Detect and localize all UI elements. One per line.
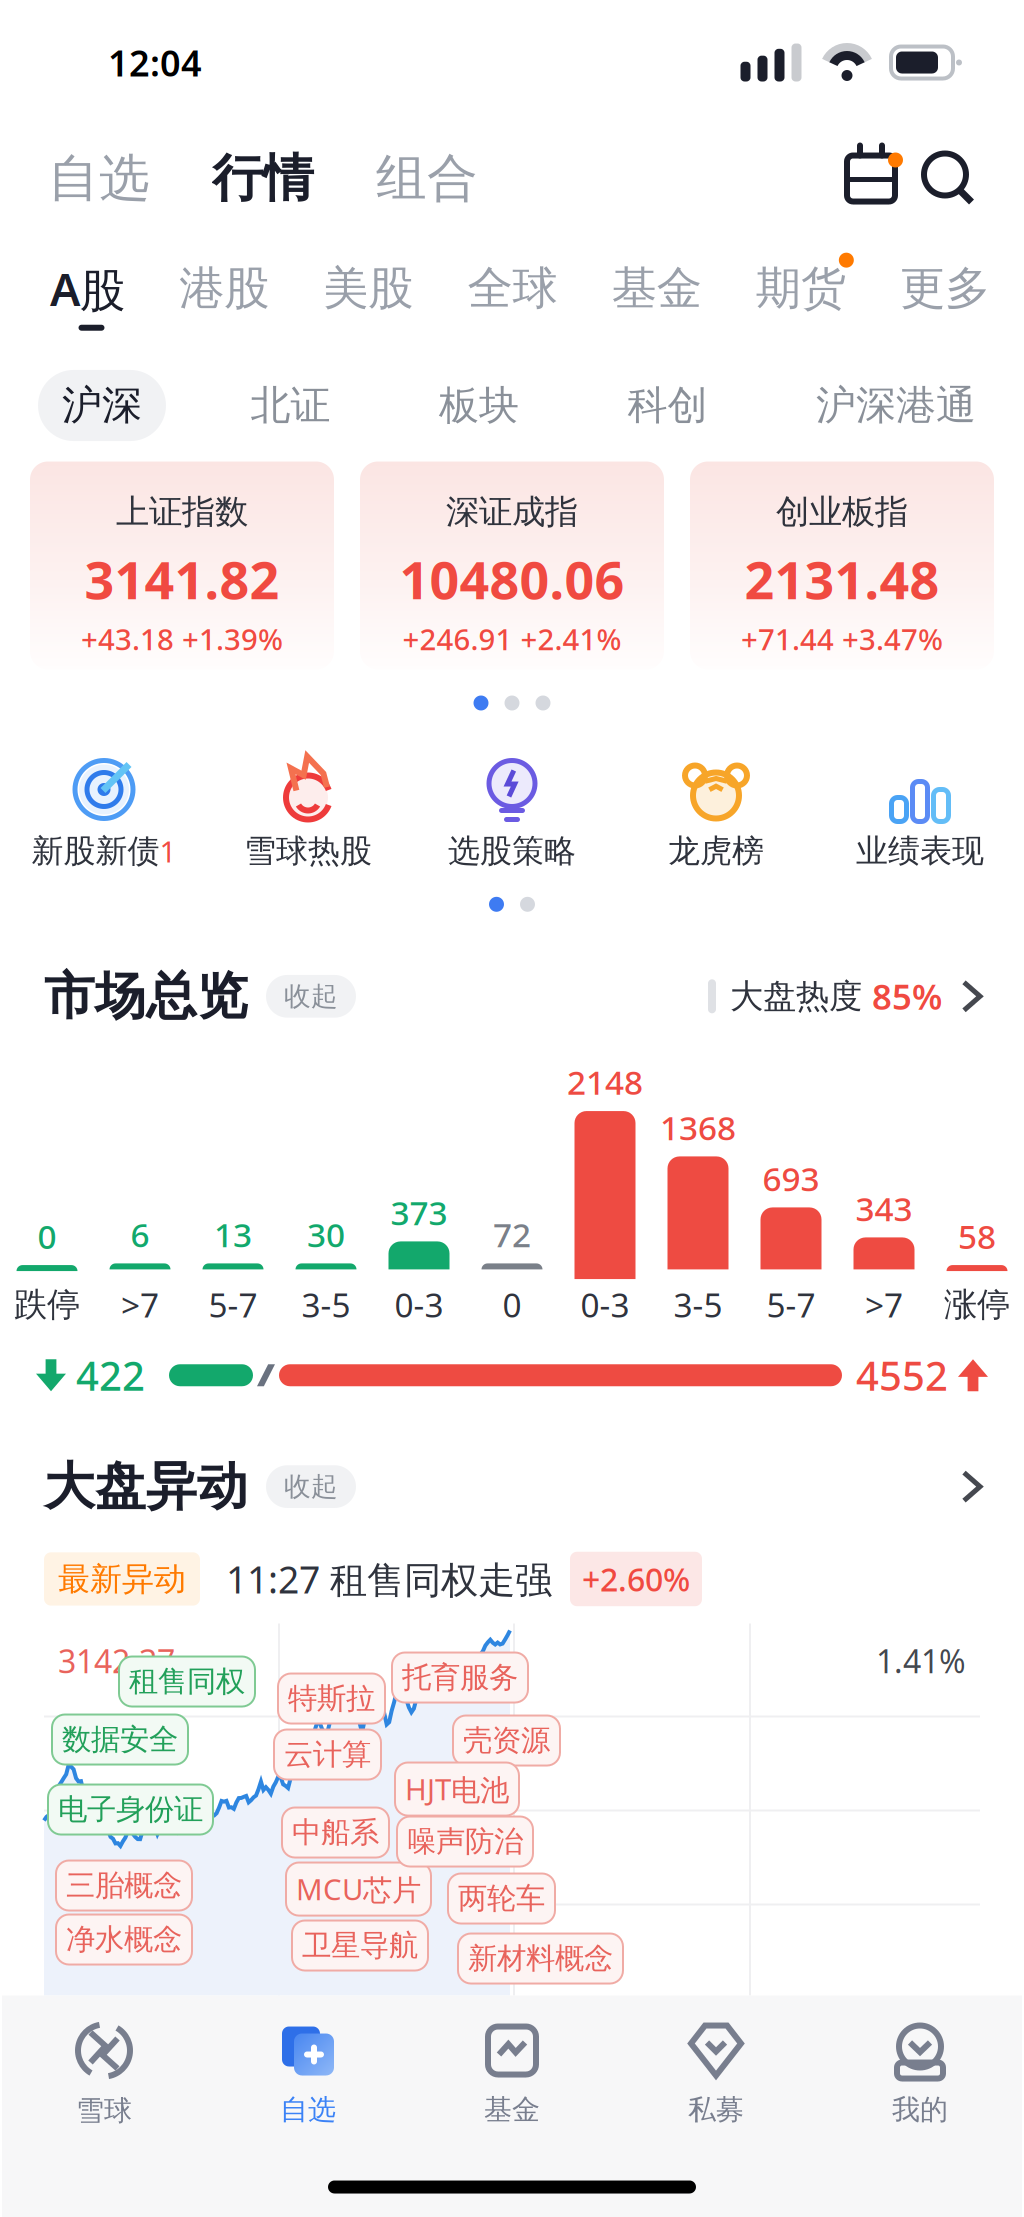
button[interactable]: 全球	[467, 253, 565, 328]
staticText: 中船系	[292, 1814, 379, 1850]
button[interactable]: 深证成指	[360, 461, 664, 669]
button[interactable]: 自选	[206, 2022, 410, 2127]
staticText: 美股	[323, 261, 413, 316]
button[interactable]: 更多	[900, 253, 998, 328]
staticText: 1368	[660, 1105, 736, 1149]
staticText: +246.91 +2.41%	[402, 619, 621, 658]
staticText: 12:04	[108, 39, 202, 86]
staticText: 自选	[48, 147, 150, 210]
staticText: 行情	[212, 147, 314, 210]
button[interactable]: 私募	[614, 2022, 818, 2127]
staticText: 三胎概念	[66, 1867, 182, 1903]
button[interactable]: 收起	[248, 975, 356, 1018]
staticText: 85%	[872, 973, 942, 1019]
staticText: 收起	[284, 980, 338, 1013]
button[interactable]: 大盘热度	[708, 973, 980, 1019]
staticText: 卫星导航	[302, 1927, 418, 1963]
staticText: MCU芯片	[296, 1869, 421, 1909]
staticText: 5-7	[766, 1282, 815, 1327]
staticText: 市场总览	[44, 965, 248, 1027]
staticText: 新股新债	[31, 831, 159, 871]
staticText: 涨停	[944, 1284, 1010, 1325]
staticText: 1	[159, 832, 176, 871]
button[interactable]: 雪球	[2, 2021, 206, 2128]
button[interactable]: 组合	[376, 147, 478, 210]
staticText: 科创	[627, 381, 707, 430]
staticText: 特斯拉	[288, 1680, 375, 1716]
staticText: 上证指数	[116, 491, 248, 532]
button[interactable]: 上证指数	[30, 461, 334, 669]
staticText: 373	[390, 1190, 447, 1234]
staticText: 我的	[892, 2092, 948, 2127]
staticText: 新材料概念	[468, 1940, 613, 1976]
staticText: 雪球	[76, 2093, 132, 2128]
staticText: 云计算	[284, 1736, 371, 1772]
staticText: 10480.06	[399, 544, 624, 613]
staticText: 沪深港通	[816, 381, 976, 430]
staticText: +2.60%	[582, 1558, 690, 1600]
button[interactable]: 基金	[612, 253, 710, 328]
button[interactable]: 板块	[415, 370, 543, 441]
button[interactable]: 新股新债	[2, 757, 206, 871]
button[interactable]: 北证	[226, 370, 354, 441]
button[interactable]: 科创	[603, 370, 731, 441]
button[interactable]: 我的	[818, 2022, 1022, 2127]
staticText: 58	[958, 1214, 996, 1258]
staticText: 基金	[484, 2092, 540, 2127]
staticText: 壳资源	[463, 1722, 550, 1758]
button[interactable]: 业绩表现	[818, 757, 1022, 871]
staticText: 5-7	[208, 1282, 257, 1327]
button[interactable]: 选股策略	[410, 757, 614, 871]
button[interactable]: 雪球热股	[206, 757, 410, 871]
staticText: 2131.48	[744, 544, 939, 613]
button[interactable]: 沪深	[38, 370, 166, 441]
button[interactable]: A股	[50, 250, 133, 331]
staticText: 693	[762, 1156, 819, 1200]
staticText: 0-3	[580, 1282, 629, 1327]
staticText: 30	[307, 1212, 345, 1256]
button[interactable]: 创业板指	[690, 461, 994, 669]
staticText: 0	[502, 1282, 521, 1327]
staticText: 基金	[612, 261, 702, 316]
button[interactable]: 沪深港通	[792, 370, 1000, 441]
button[interactable]: 美股	[323, 253, 421, 328]
staticText: 422	[76, 1349, 145, 1402]
staticText: 更多	[900, 261, 990, 316]
staticText: 跌停	[14, 1284, 80, 1325]
staticText: +43.18 +1.39%	[81, 619, 283, 658]
staticText: 电子身份证	[58, 1791, 203, 1827]
staticText: HJT电池	[405, 1769, 509, 1809]
staticText: 6	[130, 1212, 149, 1256]
staticText: 343	[855, 1186, 912, 1230]
staticText: 4552	[856, 1349, 948, 1402]
button[interactable]: 收起	[248, 1465, 356, 1508]
staticText: 两轮车	[458, 1880, 545, 1916]
button[interactable]: 更多	[964, 1473, 980, 1501]
staticText: 收起	[284, 1470, 338, 1503]
button[interactable]: 龙虎榜	[614, 757, 818, 871]
button[interactable]: 基金	[410, 2022, 614, 2127]
button[interactable]: 日历	[840, 150, 902, 206]
button[interactable]: 搜索	[902, 150, 976, 206]
staticText: 3-5	[301, 1282, 350, 1327]
staticText: 雪球热股	[244, 831, 372, 871]
staticText: 2148	[567, 1060, 643, 1104]
button[interactable]: 行情	[150, 147, 376, 210]
staticText: 沪深	[62, 381, 142, 430]
button[interactable]: 港股	[179, 253, 277, 328]
staticText: 11:27 租售同权走强	[226, 1554, 552, 1604]
staticText: 噪声防治	[407, 1823, 523, 1859]
staticText: 净水概念	[66, 1921, 182, 1957]
staticText: 租售同权	[129, 1663, 245, 1699]
staticText: 72	[493, 1212, 531, 1256]
button[interactable]: 自选	[48, 147, 150, 210]
staticText: 数据安全	[62, 1721, 178, 1757]
staticText: +71.44 +3.47%	[741, 619, 943, 658]
staticText: 私募	[688, 2092, 744, 2127]
staticText: 1.41%	[876, 1639, 966, 1682]
staticText: 3142.37	[58, 1639, 175, 1682]
staticText: 3141.82	[84, 544, 279, 613]
staticText: 深证成指	[446, 491, 578, 532]
staticText: 0	[37, 1214, 56, 1258]
button[interactable]: 期货	[756, 253, 854, 328]
